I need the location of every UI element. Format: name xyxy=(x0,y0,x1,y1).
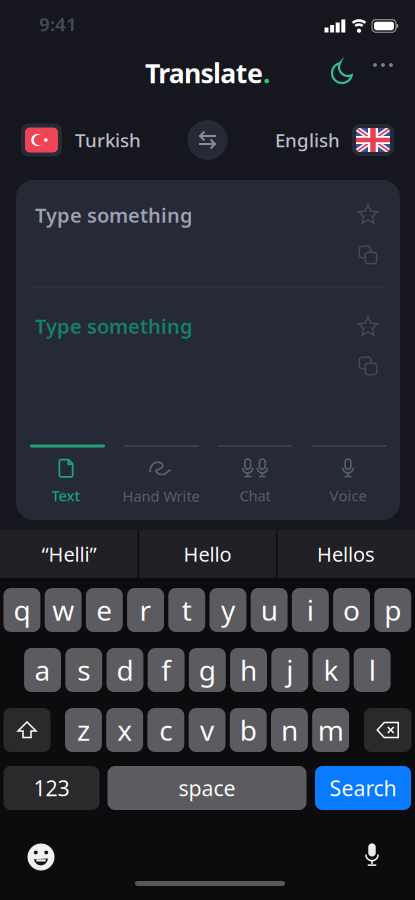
staticText: u xyxy=(261,591,278,629)
button[interactable]: o xyxy=(333,588,370,632)
button[interactable]: l xyxy=(354,648,391,692)
button[interactable]: Hellos xyxy=(281,530,411,578)
button[interactable]: a xyxy=(24,648,61,692)
button[interactable]: Shift xyxy=(3,708,50,752)
button[interactable]: Favorite xyxy=(357,316,379,338)
staticText: f xyxy=(161,651,171,689)
button[interactable]: Emoji xyxy=(26,842,56,872)
button[interactable]: Swap languages xyxy=(187,120,227,160)
button[interactable]: r xyxy=(127,588,164,632)
staticText: space xyxy=(178,774,235,802)
staticText: j xyxy=(286,651,293,689)
staticText: q xyxy=(13,591,30,629)
staticText: s xyxy=(77,651,90,689)
button[interactable]: e xyxy=(86,588,123,632)
staticText: x xyxy=(117,711,132,749)
staticText: 9:41 xyxy=(39,12,77,36)
staticText: g xyxy=(199,651,216,689)
button[interactable]: Voice xyxy=(308,454,388,510)
staticText: Hand Write xyxy=(122,486,199,506)
button[interactable]: Copy xyxy=(358,245,378,265)
button[interactable]: m xyxy=(312,708,349,752)
staticText: c xyxy=(159,711,172,749)
button[interactable]: b xyxy=(230,708,267,752)
button[interactable]: d xyxy=(106,648,143,692)
button[interactable]: Dictation xyxy=(359,841,385,869)
staticText: d xyxy=(116,651,133,689)
button[interactable]: h xyxy=(230,648,267,692)
button[interactable]: x xyxy=(106,708,143,752)
button[interactable]: y xyxy=(209,588,246,632)
staticText: Search xyxy=(329,774,396,802)
button[interactable]: s xyxy=(65,648,102,692)
staticText: z xyxy=(77,711,90,749)
button[interactable]: Turkish xyxy=(21,123,191,156)
staticText: l xyxy=(369,651,376,689)
staticText: p xyxy=(384,591,401,629)
staticText: Voice xyxy=(329,486,366,505)
staticText: a xyxy=(34,651,50,689)
staticText: Translate xyxy=(145,55,263,91)
button[interactable]: n xyxy=(271,708,308,752)
staticText: w xyxy=(52,591,74,629)
staticText: t xyxy=(182,591,192,629)
button[interactable]: f xyxy=(148,648,185,692)
button[interactable]: Favorite xyxy=(357,204,379,226)
staticText: e xyxy=(96,591,112,629)
button[interactable]: j xyxy=(271,648,308,692)
button[interactable]: q xyxy=(3,588,40,632)
staticText: Text xyxy=(51,486,80,505)
button[interactable]: space xyxy=(107,766,306,810)
staticText: . xyxy=(263,55,270,91)
staticText: n xyxy=(281,711,298,749)
button[interactable]: Search xyxy=(315,766,411,810)
button[interactable]: u xyxy=(251,588,288,632)
button[interactable]: g xyxy=(189,648,226,692)
staticText: i xyxy=(307,591,314,629)
button[interactable]: w xyxy=(45,588,82,632)
button[interactable]: z xyxy=(65,708,102,752)
staticText: “Helli” xyxy=(41,541,96,567)
staticText: Type something xyxy=(35,202,193,228)
staticText: 123 xyxy=(33,774,69,802)
staticText: b xyxy=(240,711,257,749)
staticText: v xyxy=(200,711,214,749)
button[interactable]: 123 xyxy=(3,766,99,810)
staticText: Chat xyxy=(239,486,270,505)
staticText: Hello xyxy=(183,541,231,567)
staticText: m xyxy=(318,711,344,749)
button[interactable]: t xyxy=(168,588,205,632)
button[interactable]: Delete xyxy=(364,708,411,752)
staticText: Hellos xyxy=(317,541,375,567)
button[interactable]: p xyxy=(374,588,411,632)
staticText: k xyxy=(323,651,338,689)
button[interactable]: More options xyxy=(373,63,395,83)
button[interactable]: Hello xyxy=(142,530,272,578)
staticText: Turkish xyxy=(75,128,141,152)
button[interactable]: i xyxy=(292,588,329,632)
button[interactable]: k xyxy=(312,648,349,692)
staticText: Type something xyxy=(35,313,193,339)
staticText: r xyxy=(140,591,152,629)
staticText: o xyxy=(343,591,360,629)
button[interactable]: English xyxy=(224,124,394,156)
button[interactable]: c xyxy=(147,708,184,752)
button[interactable]: Text xyxy=(26,454,106,510)
staticText: h xyxy=(240,651,257,689)
button[interactable]: v xyxy=(189,708,225,752)
button[interactable]: Copy xyxy=(358,356,378,376)
staticText: English xyxy=(275,128,340,152)
staticText: y xyxy=(221,591,235,629)
button[interactable]: Hand Write xyxy=(118,454,203,510)
button[interactable]: Dark mode xyxy=(330,61,354,85)
button[interactable]: Chat xyxy=(215,454,295,510)
button[interactable]: “Helli” xyxy=(4,530,134,578)
